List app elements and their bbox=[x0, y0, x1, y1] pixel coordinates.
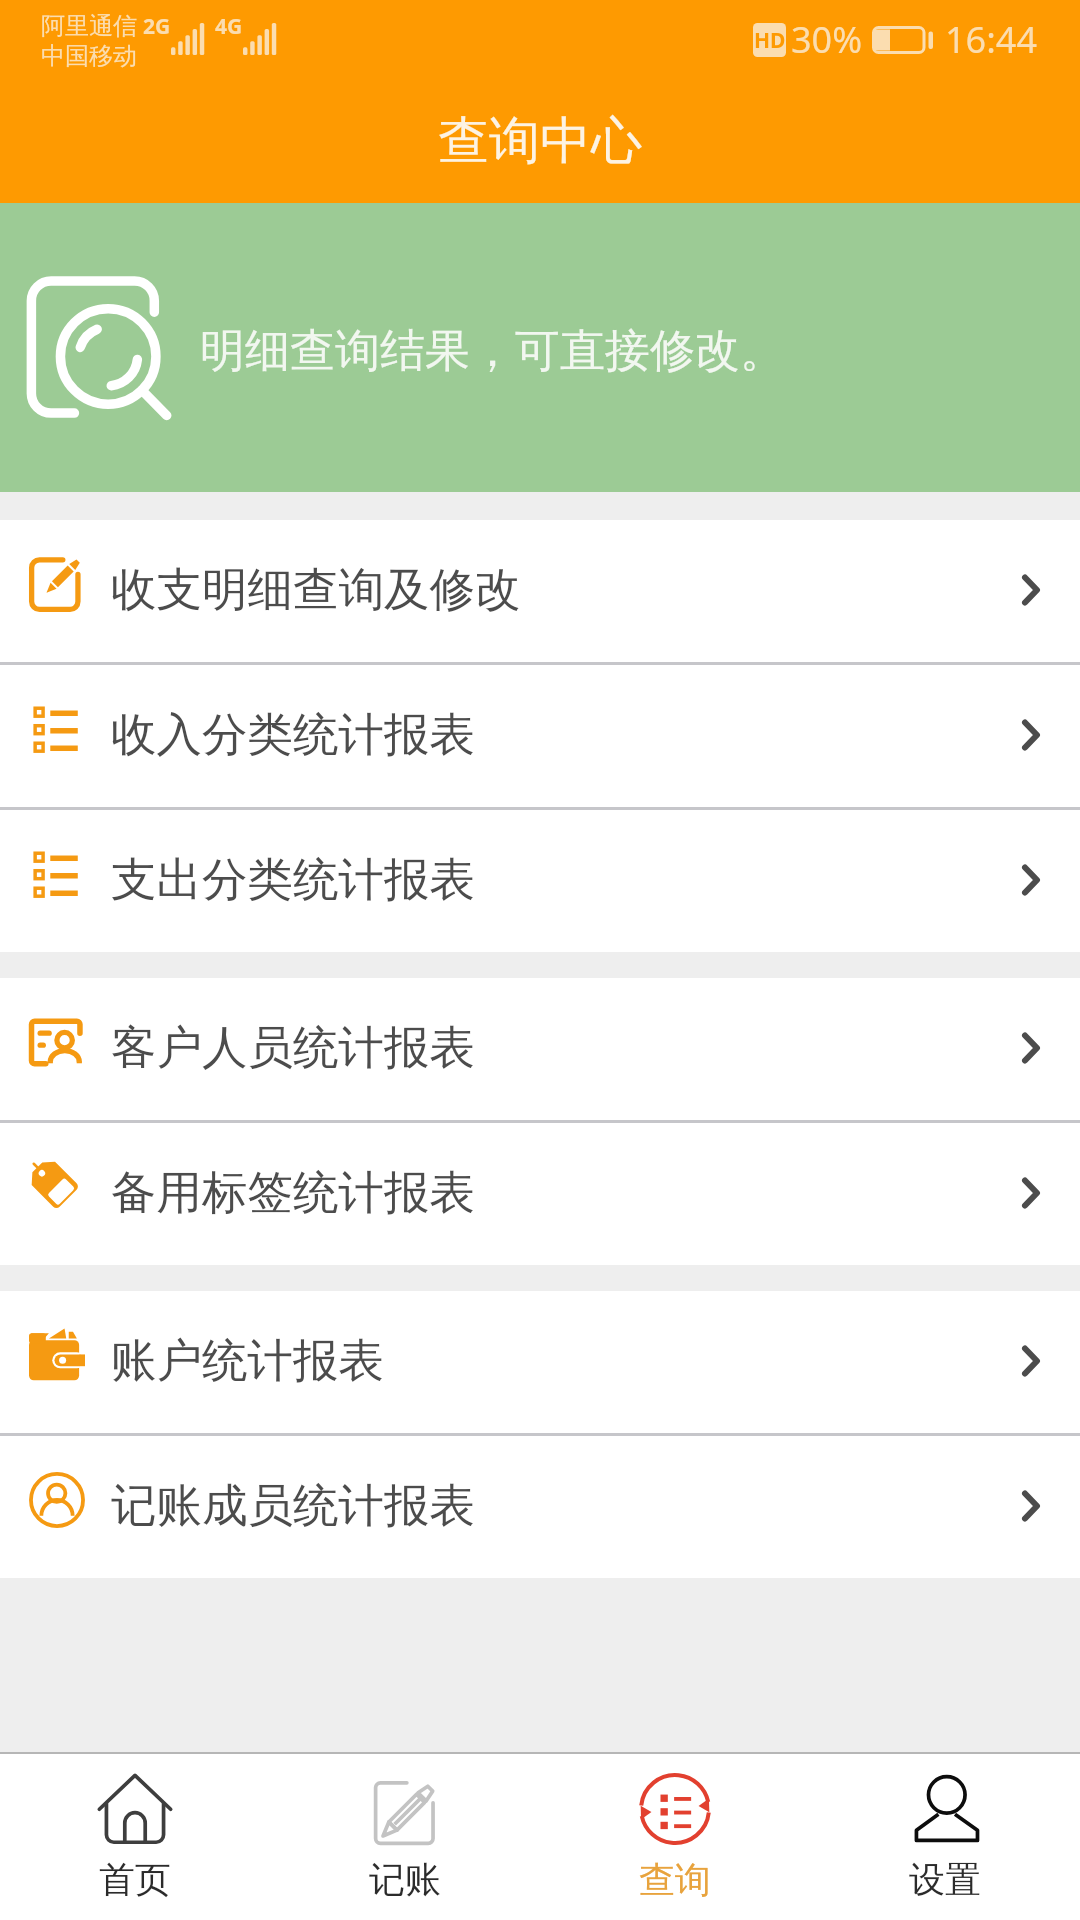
button[interactable]: 支出分类统计报表 bbox=[0, 810, 1080, 952]
staticText: 支出分类统计报表 bbox=[111, 851, 475, 908]
button[interactable]: Settings bbox=[810, 1754, 1080, 1920]
button[interactable]: 记账成员统计报表 bbox=[0, 1436, 1080, 1578]
staticText: 首页 bbox=[99, 1857, 171, 1902]
staticText: 4G bbox=[215, 12, 243, 41]
button[interactable]: Home bbox=[0, 1754, 270, 1920]
staticText: 记账成员统计报表 bbox=[111, 1477, 475, 1534]
button[interactable]: Record bbox=[270, 1754, 540, 1920]
staticText: 设置 bbox=[909, 1857, 981, 1902]
staticText: 账户统计报表 bbox=[111, 1332, 384, 1389]
staticText: 收支明细查询及修改 bbox=[111, 561, 521, 618]
button[interactable]: 收支明细查询及修改 bbox=[0, 520, 1080, 662]
button[interactable]: 客户人员统计报表 bbox=[0, 978, 1080, 1120]
staticText: 30% bbox=[791, 15, 863, 64]
staticText: 查询中心 bbox=[438, 109, 642, 173]
staticText: 明细查询结果，可直接修改。 bbox=[200, 323, 785, 380]
button[interactable]: 备用标签统计报表 bbox=[0, 1123, 1080, 1265]
staticText: 中国移动 bbox=[41, 41, 137, 71]
staticText: 2G bbox=[143, 12, 171, 41]
staticText: 记账 bbox=[369, 1857, 441, 1902]
staticText: HD bbox=[754, 26, 786, 55]
staticText: 备用标签统计报表 bbox=[111, 1164, 475, 1221]
staticText: 阿里通信 bbox=[41, 11, 137, 41]
staticText: 收入分类统计报表 bbox=[111, 706, 475, 763]
staticText: 客户人员统计报表 bbox=[111, 1019, 475, 1076]
staticText: 查询 bbox=[639, 1857, 711, 1902]
button[interactable]: 账户统计报表 bbox=[0, 1291, 1080, 1433]
staticText: 16:44 bbox=[945, 15, 1038, 64]
button[interactable]: Query bbox=[540, 1754, 810, 1920]
button[interactable]: 收入分类统计报表 bbox=[0, 665, 1080, 807]
